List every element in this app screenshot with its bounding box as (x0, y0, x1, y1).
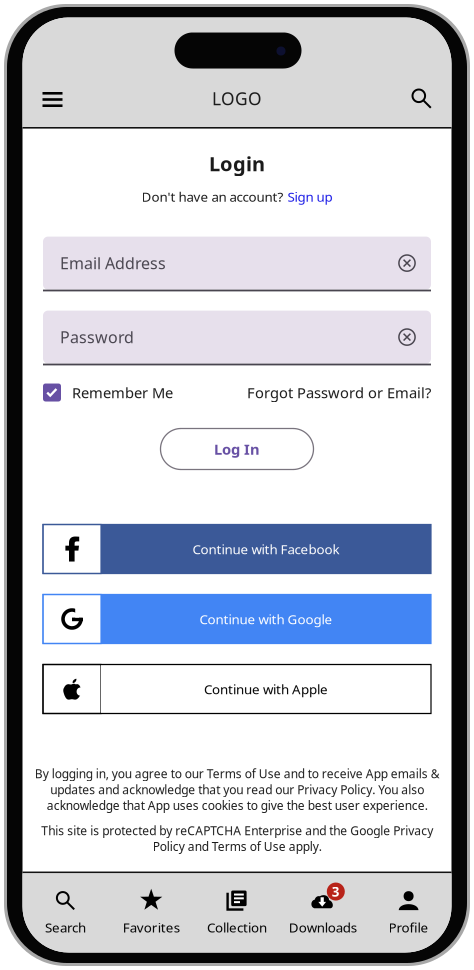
button[interactable]: Search (22, 887, 108, 939)
button[interactable]: Log In (160, 428, 313, 469)
staticText: Downloads (289, 918, 357, 936)
staticText: Remember Me (72, 383, 173, 402)
button[interactable]: 3 (280, 887, 366, 939)
staticText: Continue with Apple (204, 680, 328, 698)
staticText: Collection (207, 918, 267, 936)
staticText: Search (45, 918, 86, 936)
button[interactable]: Menu (30, 77, 74, 121)
button[interactable]: Continue with Google (43, 594, 431, 643)
button[interactable]: Collection (194, 887, 280, 939)
button[interactable]: Continue with Apple (43, 664, 431, 713)
staticText: By logging in, you agree to our Terms of… (34, 766, 439, 813)
staticText: 3 (332, 883, 340, 900)
staticText: Login (209, 150, 265, 177)
staticText: Sign up (287, 188, 332, 205)
button[interactable]: Clear Email Address (392, 248, 422, 278)
staticText: Favorites (123, 918, 180, 936)
button[interactable]: Forgot Password or Email? (247, 383, 431, 402)
staticText: This site is protected by reCAPTCHA Ente… (41, 823, 433, 854)
button[interactable]: Search (399, 76, 443, 120)
staticText: Log In (214, 439, 260, 459)
staticText: Profile (389, 918, 429, 936)
staticText: Don't have an account? (141, 188, 283, 205)
button[interactable]: Sign up (287, 188, 332, 205)
staticText: LOGO (212, 87, 262, 110)
button[interactable]: Favorites (108, 887, 194, 939)
button[interactable]: Profile (366, 887, 451, 939)
staticText: Password (60, 326, 134, 348)
staticText: Forgot Password or Email? (247, 383, 431, 402)
staticText: Email Address (60, 252, 166, 274)
staticText: Continue with Google (199, 610, 332, 628)
button[interactable]: Continue with Facebook (43, 524, 431, 573)
button[interactable]: Remember Me (43, 383, 173, 402)
staticText: Continue with Facebook (192, 540, 339, 558)
button[interactable]: Clear Password (392, 322, 422, 352)
